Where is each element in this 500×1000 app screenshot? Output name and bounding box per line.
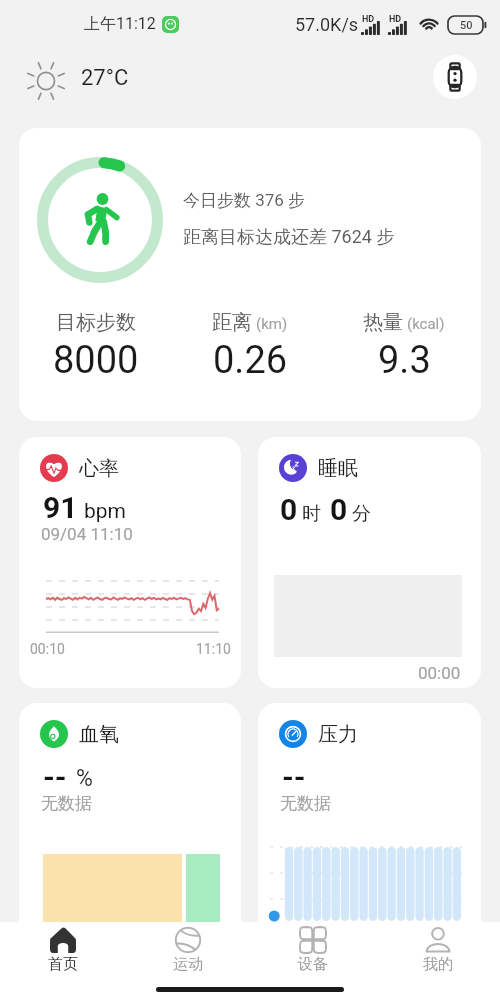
staticText: 57.0K/s [295,14,359,35]
button[interactable]: 血氧 [19,703,241,954]
staticText: 血氧 [79,722,119,747]
staticText: % [76,765,93,792]
staticText: -- [43,759,67,794]
staticText: 9.3 [378,338,431,383]
staticText: 心率 [79,456,119,481]
staticText: 热量 [363,310,403,335]
staticText: 距离 [212,310,252,335]
staticText: 今日步数 376 步 [183,190,306,211]
button[interactable]: 首页 [0,922,125,978]
button[interactable]: 我的 [375,922,500,978]
staticText: 时 [302,502,321,526]
staticText: 首页 [48,955,78,974]
staticText: 0.26 [213,338,288,383]
staticText: HD [389,14,402,25]
staticText: 00:00 [418,663,461,683]
staticText: 设备 [298,955,328,974]
staticText: bpm [84,499,126,524]
staticText: 0 [280,492,298,527]
staticText: 上午11:12 [84,14,156,34]
staticText: 分 [352,502,371,526]
staticText: (km) [256,315,288,333]
button[interactable]: 设备 [250,922,375,978]
staticText: 00:10 [30,641,65,657]
staticText: 运动 [173,955,203,974]
button[interactable]: 心率 [19,437,241,688]
staticText: 睡眠 [318,456,358,481]
staticText: 我的 [423,955,453,974]
staticText: 09/04 11:10 [41,524,133,544]
staticText: 91 [43,490,78,525]
button[interactable]: 睡眠 [258,437,481,688]
staticText: (kcal) [407,315,445,333]
staticText: 11:10 [196,641,231,657]
staticText: 目标步数 [56,310,136,335]
staticText: -- [282,759,306,794]
staticText: 8000 [53,338,139,383]
staticText: 无数据 [41,793,92,814]
staticText: 距离目标达成还差 7624 步 [183,226,395,249]
button[interactable]: 压力 [258,703,481,954]
staticText: 0 [330,492,348,527]
button[interactable]: 运动 [125,922,250,978]
button[interactable]: My band device [433,55,477,99]
staticText: 压力 [318,722,358,747]
button[interactable]: 今日步数 376 步 [19,128,481,421]
staticText: HD [362,14,375,25]
staticText: 27°C [81,65,129,91]
staticText: 无数据 [280,793,331,814]
staticText: 50 [460,19,473,32]
